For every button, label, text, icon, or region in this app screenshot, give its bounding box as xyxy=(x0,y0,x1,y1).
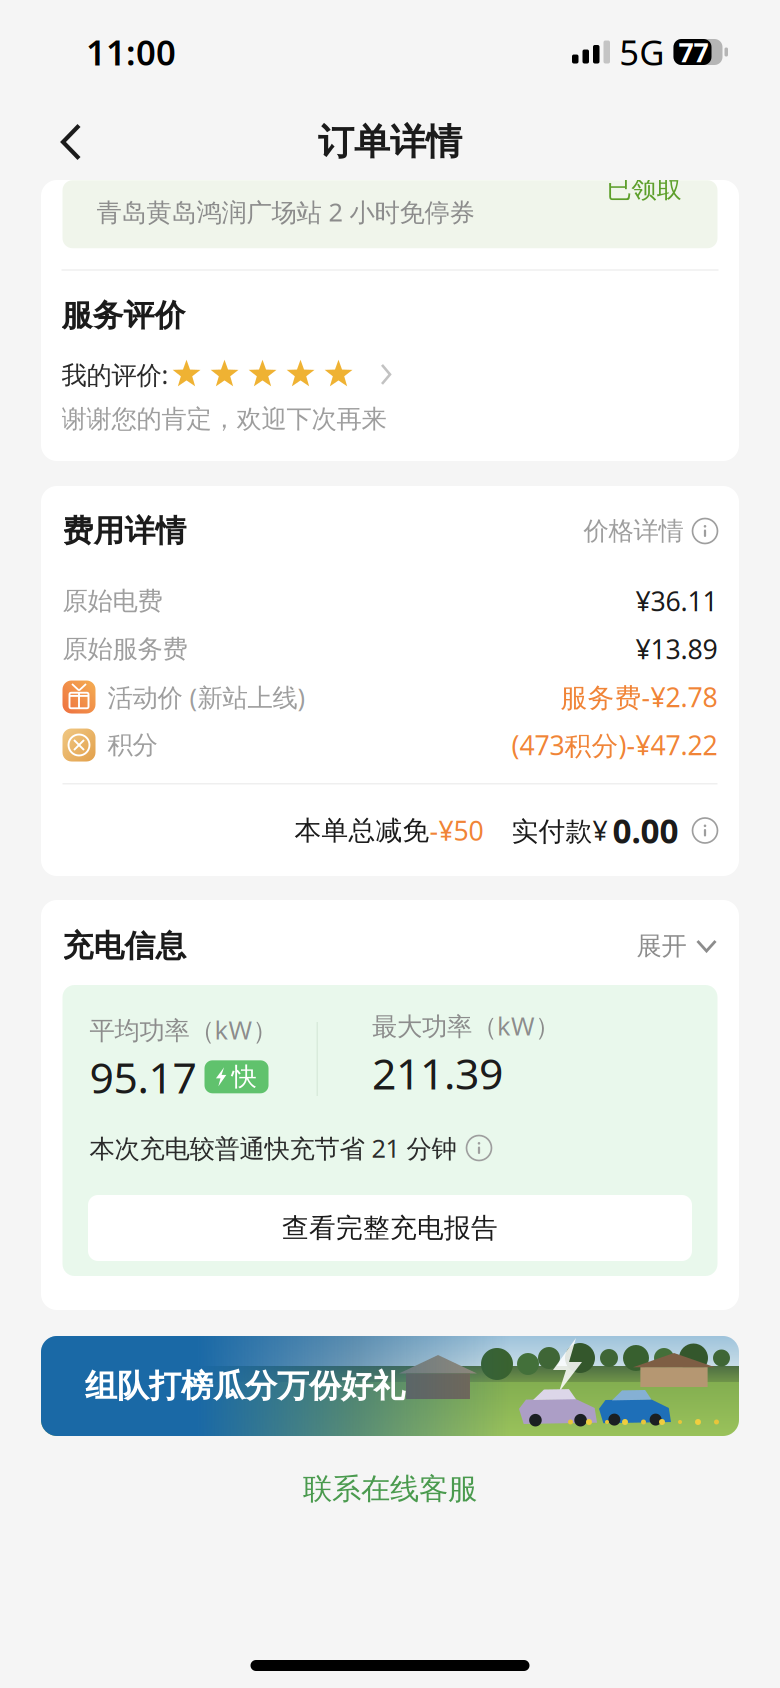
staticText: 0.00 xyxy=(612,808,678,853)
staticText: 5G xyxy=(619,29,664,75)
staticText: 本单总减免 xyxy=(294,814,429,847)
button[interactable]: 价格详情 xyxy=(583,515,717,546)
staticText: 积分 xyxy=(107,729,157,760)
button[interactable]: 我的评价: xyxy=(61,334,718,394)
staticText: 原始电费 xyxy=(62,585,162,616)
staticText: 本次充电较普通快充节省 21 分钟 xyxy=(89,1131,456,1165)
staticText: 我的评价: xyxy=(61,358,168,391)
staticText: 95.17 xyxy=(89,1048,196,1105)
staticText: 211.39 xyxy=(372,1044,503,1101)
staticText: 活动价 (新站上线) xyxy=(107,680,305,714)
staticText: 快 xyxy=(231,1061,256,1092)
staticText: 充电信息 xyxy=(62,927,186,965)
button[interactable]: 返回 xyxy=(39,109,103,175)
staticText: 已领取 xyxy=(606,173,681,204)
staticText: 组队打榜瓜分万份好礼 xyxy=(85,1366,405,1406)
staticText: 11:00 xyxy=(86,29,176,75)
staticText: 服务评价 xyxy=(61,297,185,334)
staticText: ¥36.11 xyxy=(635,583,717,619)
staticText: 原始服务费 xyxy=(62,633,187,664)
button[interactable]: 查看完整充电报告 xyxy=(88,1195,692,1261)
staticText: 77 xyxy=(678,34,708,70)
staticText: (473积分)-¥47.22 xyxy=(511,727,717,763)
staticText: 实付款¥ xyxy=(511,813,607,848)
staticText: 服务费-¥2.78 xyxy=(560,679,717,715)
staticText: ¥13.89 xyxy=(635,631,717,667)
staticText: 订单详情 xyxy=(318,120,462,164)
staticText: 谢谢您的肯定，欢迎下次再来 xyxy=(61,403,386,434)
button[interactable]: 展开 xyxy=(636,930,717,961)
staticText: 展开 xyxy=(636,930,686,961)
button[interactable]: 组队打榜瓜分万份好礼 xyxy=(41,1336,739,1436)
staticText: 联系在线客服 xyxy=(303,1471,477,1507)
staticText: 最大功率（kW） xyxy=(372,1009,560,1042)
staticText: 青岛黄岛鸿润广场站 2 小时免停券 xyxy=(96,195,474,228)
staticText: 费用详情 xyxy=(62,512,186,550)
button[interactable]: 联系在线客服 xyxy=(190,1436,590,1542)
staticText: 平均功率（kW） xyxy=(89,1013,277,1046)
staticText: 价格详情 xyxy=(583,515,683,546)
staticText: -¥50 xyxy=(429,813,483,848)
staticText: 查看完整充电报告 xyxy=(282,1212,498,1244)
